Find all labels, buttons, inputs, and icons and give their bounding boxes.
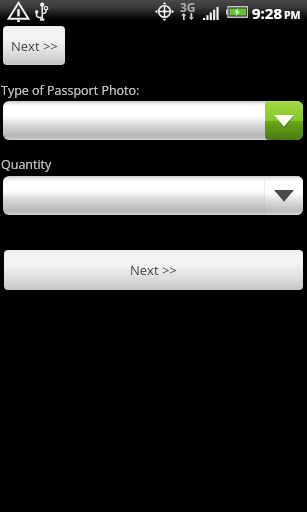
staticText: Type of Passport Photo: [1,82,140,99]
staticText: Next >> [130,261,177,279]
button[interactable]: Next >> [3,26,65,65]
button[interactable] [3,176,303,215]
button[interactable] [3,101,303,140]
staticText: Quantity [1,156,52,173]
other: USB connected [34,2,48,21]
staticText: 9:28 [252,3,283,23]
other: GPS active [155,2,174,21]
staticText: Next >> [11,37,58,55]
staticText: PM [284,8,301,22]
staticText: 3G [180,0,196,15]
other: Warning [8,2,29,22]
button[interactable]: Next >> [4,250,303,290]
